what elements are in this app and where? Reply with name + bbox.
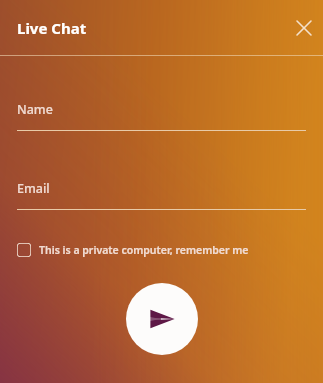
button[interactable]: Close xyxy=(289,13,319,43)
button[interactable]: Send message xyxy=(126,283,198,355)
staticText: Name xyxy=(17,101,53,118)
staticText: Email xyxy=(17,180,50,197)
button[interactable]: Email xyxy=(0,180,323,210)
button[interactable]: This is a private computer, remember me xyxy=(0,239,323,261)
button[interactable]: Name xyxy=(0,101,323,131)
staticText: Live Chat xyxy=(17,18,87,38)
staticText: This is a private computer, remember me xyxy=(39,243,249,257)
